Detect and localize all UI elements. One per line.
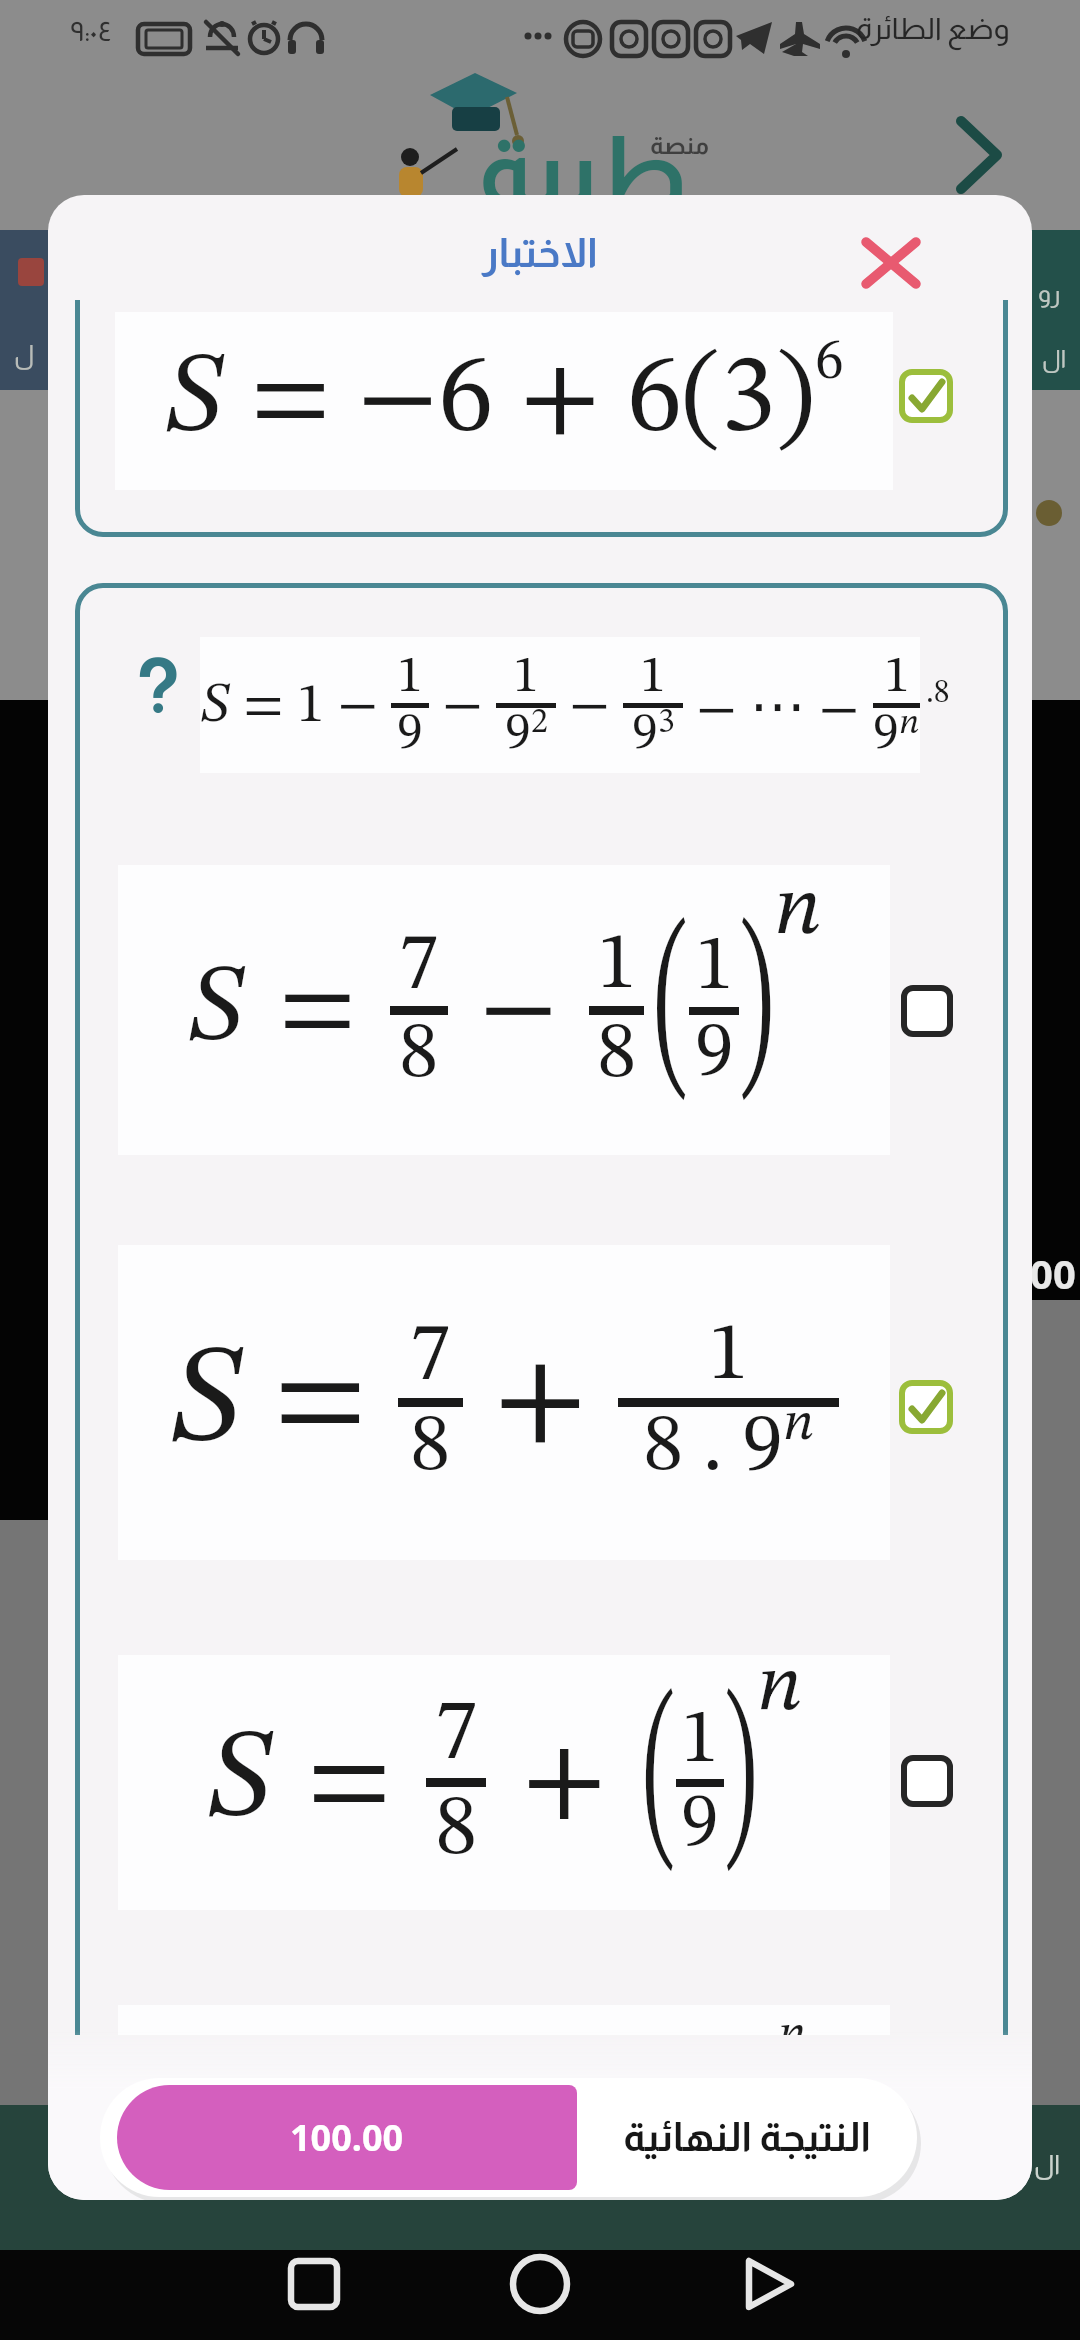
button[interactable] [848, 223, 934, 303]
staticText: 00 [1030, 1246, 1076, 1300]
staticText: 1 [884, 651, 910, 703]
staticText: 2 [531, 706, 548, 740]
staticText: = [253, 957, 382, 1065]
staticText: S [206, 1720, 273, 1845]
staticText: S [187, 957, 245, 1065]
button[interactable]: S [118, 1245, 890, 1560]
staticText: .8 [926, 678, 950, 710]
staticText: 9 [397, 708, 423, 760]
button[interactable]: 100.00 [100, 2078, 917, 2197]
staticText: 7 [410, 1316, 451, 1398]
staticText: 8 . 9 [643, 1407, 783, 1489]
staticText: = −6 + 6(3) [224, 345, 815, 457]
staticText: 1 [513, 651, 539, 703]
staticText: 3 [658, 706, 675, 740]
staticText: + [494, 1724, 635, 1842]
staticText: ال [1042, 345, 1067, 372]
staticText: ( [643, 1683, 676, 1882]
staticText: n [757, 1648, 803, 1728]
button[interactable] [360, 2250, 720, 2340]
button[interactable] [0, 2250, 360, 2340]
staticText: 100.00 [290, 2113, 404, 2162]
staticText: = [279, 1724, 420, 1842]
staticText: النتيجة النهائية [623, 2115, 871, 2160]
staticText: ) [739, 911, 774, 1111]
staticText: 1 [597, 926, 637, 1006]
staticText: 8 [597, 1015, 637, 1095]
staticText: = [243, 1338, 398, 1468]
staticText: ? [135, 644, 181, 729]
staticText: S [169, 1334, 243, 1472]
staticText: طيبة [478, 118, 688, 225]
button[interactable] [720, 2250, 1080, 2340]
button[interactable] [899, 369, 953, 423]
staticText: − [556, 678, 623, 734]
button[interactable]: S [200, 637, 920, 773]
staticText: n [774, 869, 822, 953]
staticText: 8 [399, 1015, 439, 1095]
staticText: 7 [399, 926, 439, 1006]
staticText: n [899, 706, 920, 742]
staticText: 1 [640, 651, 666, 703]
staticText: ل [14, 340, 35, 369]
staticText: n [783, 1397, 815, 1452]
staticText: ) [724, 1683, 757, 1882]
staticText: رو [1038, 280, 1061, 307]
button[interactable]: S [115, 312, 893, 490]
staticText: − ⋯ − [683, 673, 873, 738]
staticText: الاختبار [482, 231, 598, 276]
staticText: − [454, 957, 583, 1065]
button[interactable]: S [118, 865, 890, 1155]
staticText: 1 [681, 1703, 719, 1779]
staticText: 9 [505, 708, 531, 760]
staticText: وضع الطائرة [856, 12, 1010, 45]
button[interactable] [899, 1380, 953, 1434]
staticText: S [164, 345, 224, 457]
button[interactable]: S [118, 1655, 890, 1910]
staticText: 9 [873, 708, 899, 760]
staticText: منصة [650, 132, 710, 159]
staticText: 9 [695, 1015, 734, 1093]
staticText: 6 [815, 334, 844, 392]
staticText: = 1 − [230, 678, 391, 734]
staticText: + [463, 1338, 618, 1468]
staticText: 1 [695, 929, 734, 1007]
staticText: 1 [708, 1316, 749, 1398]
staticText: ٩:٠٤ [70, 16, 112, 47]
staticText: n [778, 2011, 807, 2035]
staticText: ( [654, 911, 689, 1111]
staticText: 7 [435, 1692, 478, 1778]
staticText: S [200, 678, 230, 734]
staticText: − [429, 678, 496, 734]
staticText: 8 [410, 1407, 451, 1489]
button[interactable] [901, 1755, 953, 1807]
staticText: ال [1034, 2150, 1061, 2179]
button[interactable] [901, 985, 953, 1037]
staticText: 9 [681, 1787, 719, 1863]
staticText: 1 [397, 651, 423, 703]
staticText: 9 [632, 708, 658, 760]
staticText: 8 [435, 1787, 478, 1873]
